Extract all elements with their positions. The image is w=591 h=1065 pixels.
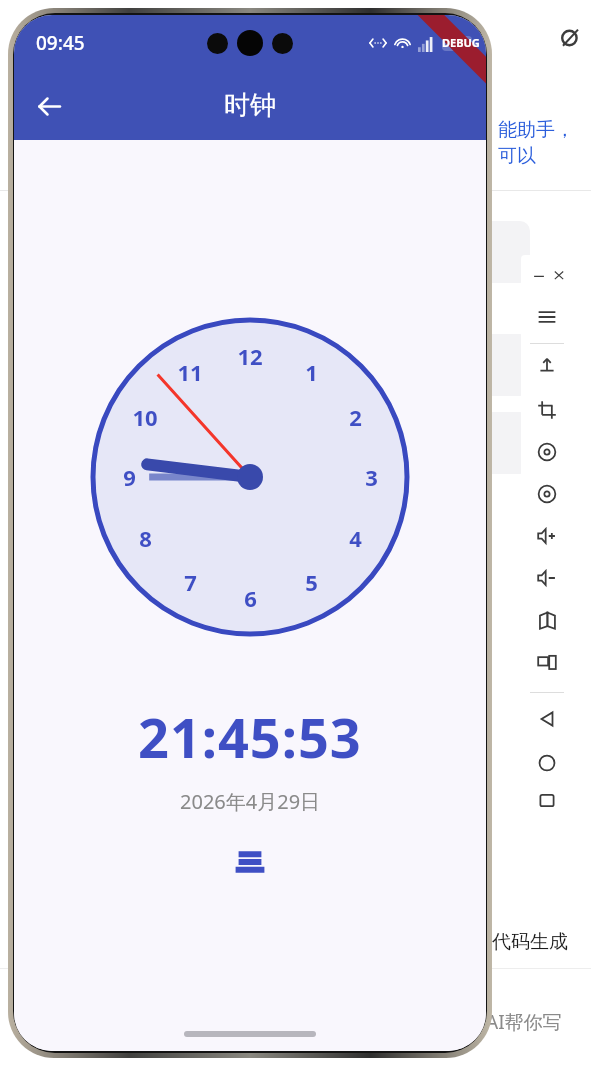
button[interactable]: Back bbox=[24, 81, 74, 131]
button[interactable]: back bbox=[531, 703, 563, 735]
staticText: 2 bbox=[349, 402, 362, 432]
staticText: 6 bbox=[244, 583, 257, 613]
button[interactable]: menu bbox=[531, 301, 563, 333]
staticText: 21:45:53 bbox=[138, 700, 362, 774]
button[interactable]: close bbox=[551, 263, 567, 287]
staticText: 4 bbox=[349, 523, 362, 553]
staticText: 100 bbox=[449, 38, 465, 50]
staticText: 9 bbox=[123, 462, 136, 492]
staticText: 能助手，可以 bbox=[498, 118, 591, 168]
button[interactable]: voldn bbox=[531, 562, 563, 594]
staticText: 时钟 bbox=[224, 89, 276, 122]
button[interactable]: resize bbox=[531, 646, 563, 678]
button[interactable]: volup bbox=[531, 520, 563, 552]
button[interactable]: min bbox=[527, 263, 551, 287]
staticText: 3 bbox=[365, 462, 378, 492]
staticText: 7 bbox=[184, 567, 197, 597]
button[interactable]: recents bbox=[531, 791, 563, 810]
staticText: DEBUG bbox=[442, 35, 480, 50]
staticText: 2026年4月29日 bbox=[180, 788, 321, 815]
button[interactable]: rotr bbox=[531, 478, 563, 510]
staticText: 12 bbox=[237, 341, 263, 371]
button[interactable]: rotl bbox=[531, 436, 563, 468]
staticText: 势 bbox=[470, 299, 490, 324]
staticText: 代码生成 bbox=[492, 930, 568, 954]
staticText: 10 bbox=[132, 402, 158, 432]
button[interactable]: shot bbox=[531, 394, 563, 426]
staticText: 09:45 bbox=[36, 30, 85, 56]
button[interactable]: fold bbox=[531, 604, 563, 636]
button[interactable]: power bbox=[531, 352, 563, 384]
staticText: 11 bbox=[177, 357, 203, 387]
button[interactable]: Menu bbox=[225, 837, 275, 887]
staticText: 8 bbox=[139, 523, 152, 553]
staticText: 1 bbox=[305, 357, 318, 387]
staticText: 5 bbox=[305, 567, 318, 597]
staticText: AI帮你写 bbox=[486, 1009, 562, 1035]
button[interactable]: home bbox=[531, 747, 563, 779]
